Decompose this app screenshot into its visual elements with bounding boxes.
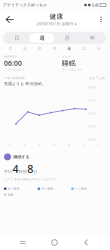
staticText: この 1 週間の睡眠は平均より短めです。 — [4, 177, 59, 181]
button[interactable]: 月 — [54, 33, 80, 43]
staticText: 6時間 — [88, 112, 96, 115]
staticText: 月 — [8, 46, 12, 51]
staticText: 2025年9月1日 金曜日 ▾ — [36, 21, 76, 26]
staticText: 就寝時刻 — [4, 55, 16, 58]
button[interactable]: 年 — [80, 33, 105, 43]
staticText: 4 — [12, 162, 18, 176]
button[interactable]: 日 — [91, 45, 106, 52]
staticText: 7時間 — [88, 99, 96, 102]
staticText: 木 — [52, 46, 56, 51]
button[interactable]: 履歴 — [14, 236, 32, 249]
button[interactable]: 日 — [4, 33, 29, 43]
staticText: 5:45 — [92, 2, 99, 8]
staticText: 今日の起床時刻 — [4, 68, 25, 71]
staticText: 金 — [67, 46, 71, 51]
staticText: 8時間 — [88, 86, 96, 89]
button[interactable]: 週 — [29, 33, 55, 43]
staticText: 月 — [65, 35, 70, 41]
button[interactable]: メニュー — [95, 12, 107, 27]
staticText: 土 — [82, 46, 86, 51]
button[interactable]: 土 — [77, 45, 91, 52]
staticText: 睡眠する — [13, 154, 29, 159]
staticText: レム睡眠 — [75, 187, 87, 190]
staticText: 水 — [38, 46, 42, 51]
staticText: 水 — [38, 143, 41, 146]
staticText: 日 — [97, 46, 101, 51]
staticText: 睡眠 — [62, 59, 76, 67]
staticText: 火 — [23, 46, 27, 51]
staticText: 木 — [53, 143, 56, 146]
button[interactable]: 金 — [62, 45, 77, 52]
button[interactable]: 水 — [32, 45, 47, 52]
staticText: 06:00 — [4, 59, 22, 68]
staticText: 先週よりも 30 分短め。 — [4, 81, 46, 86]
staticText: 深い睡眠 — [8, 187, 20, 190]
staticText: 今週の睡眠時間 — [4, 76, 25, 80]
staticText: 浅い睡眠 — [41, 187, 53, 190]
staticText: 眠りの質を示す — [62, 68, 83, 71]
staticText: スコア — [62, 55, 71, 58]
button[interactable]: ホーム — [45, 236, 63, 249]
staticText: 平均 — [4, 169, 12, 174]
button[interactable]: 火 — [18, 45, 32, 52]
button[interactable]: 戻る — [2, 12, 18, 27]
staticText: 月 — [9, 143, 12, 146]
staticText: 土 — [82, 143, 85, 146]
staticText: 覚醒 — [8, 193, 14, 196]
staticText: 火 — [24, 143, 27, 146]
button[interactable]: 木 — [47, 45, 62, 52]
staticText: 8 — [27, 162, 33, 176]
staticText: 年 — [90, 35, 95, 41]
staticText: 時間 — [19, 169, 27, 174]
staticText: 健康 — [49, 12, 63, 21]
staticText: 週 — [39, 35, 44, 41]
button[interactable]: 月 — [3, 45, 18, 52]
staticText: 5時間 — [88, 125, 96, 128]
staticText: 分 — [34, 169, 38, 174]
staticText: 金 — [68, 143, 71, 146]
staticText: 日 — [14, 35, 19, 41]
staticText: アナリティクスめっちゃ — [3, 2, 47, 7]
button[interactable]: 戻る — [77, 236, 95, 249]
staticText: 4時間 — [88, 138, 96, 141]
staticText: 過去 7 日間 — [89, 76, 105, 80]
